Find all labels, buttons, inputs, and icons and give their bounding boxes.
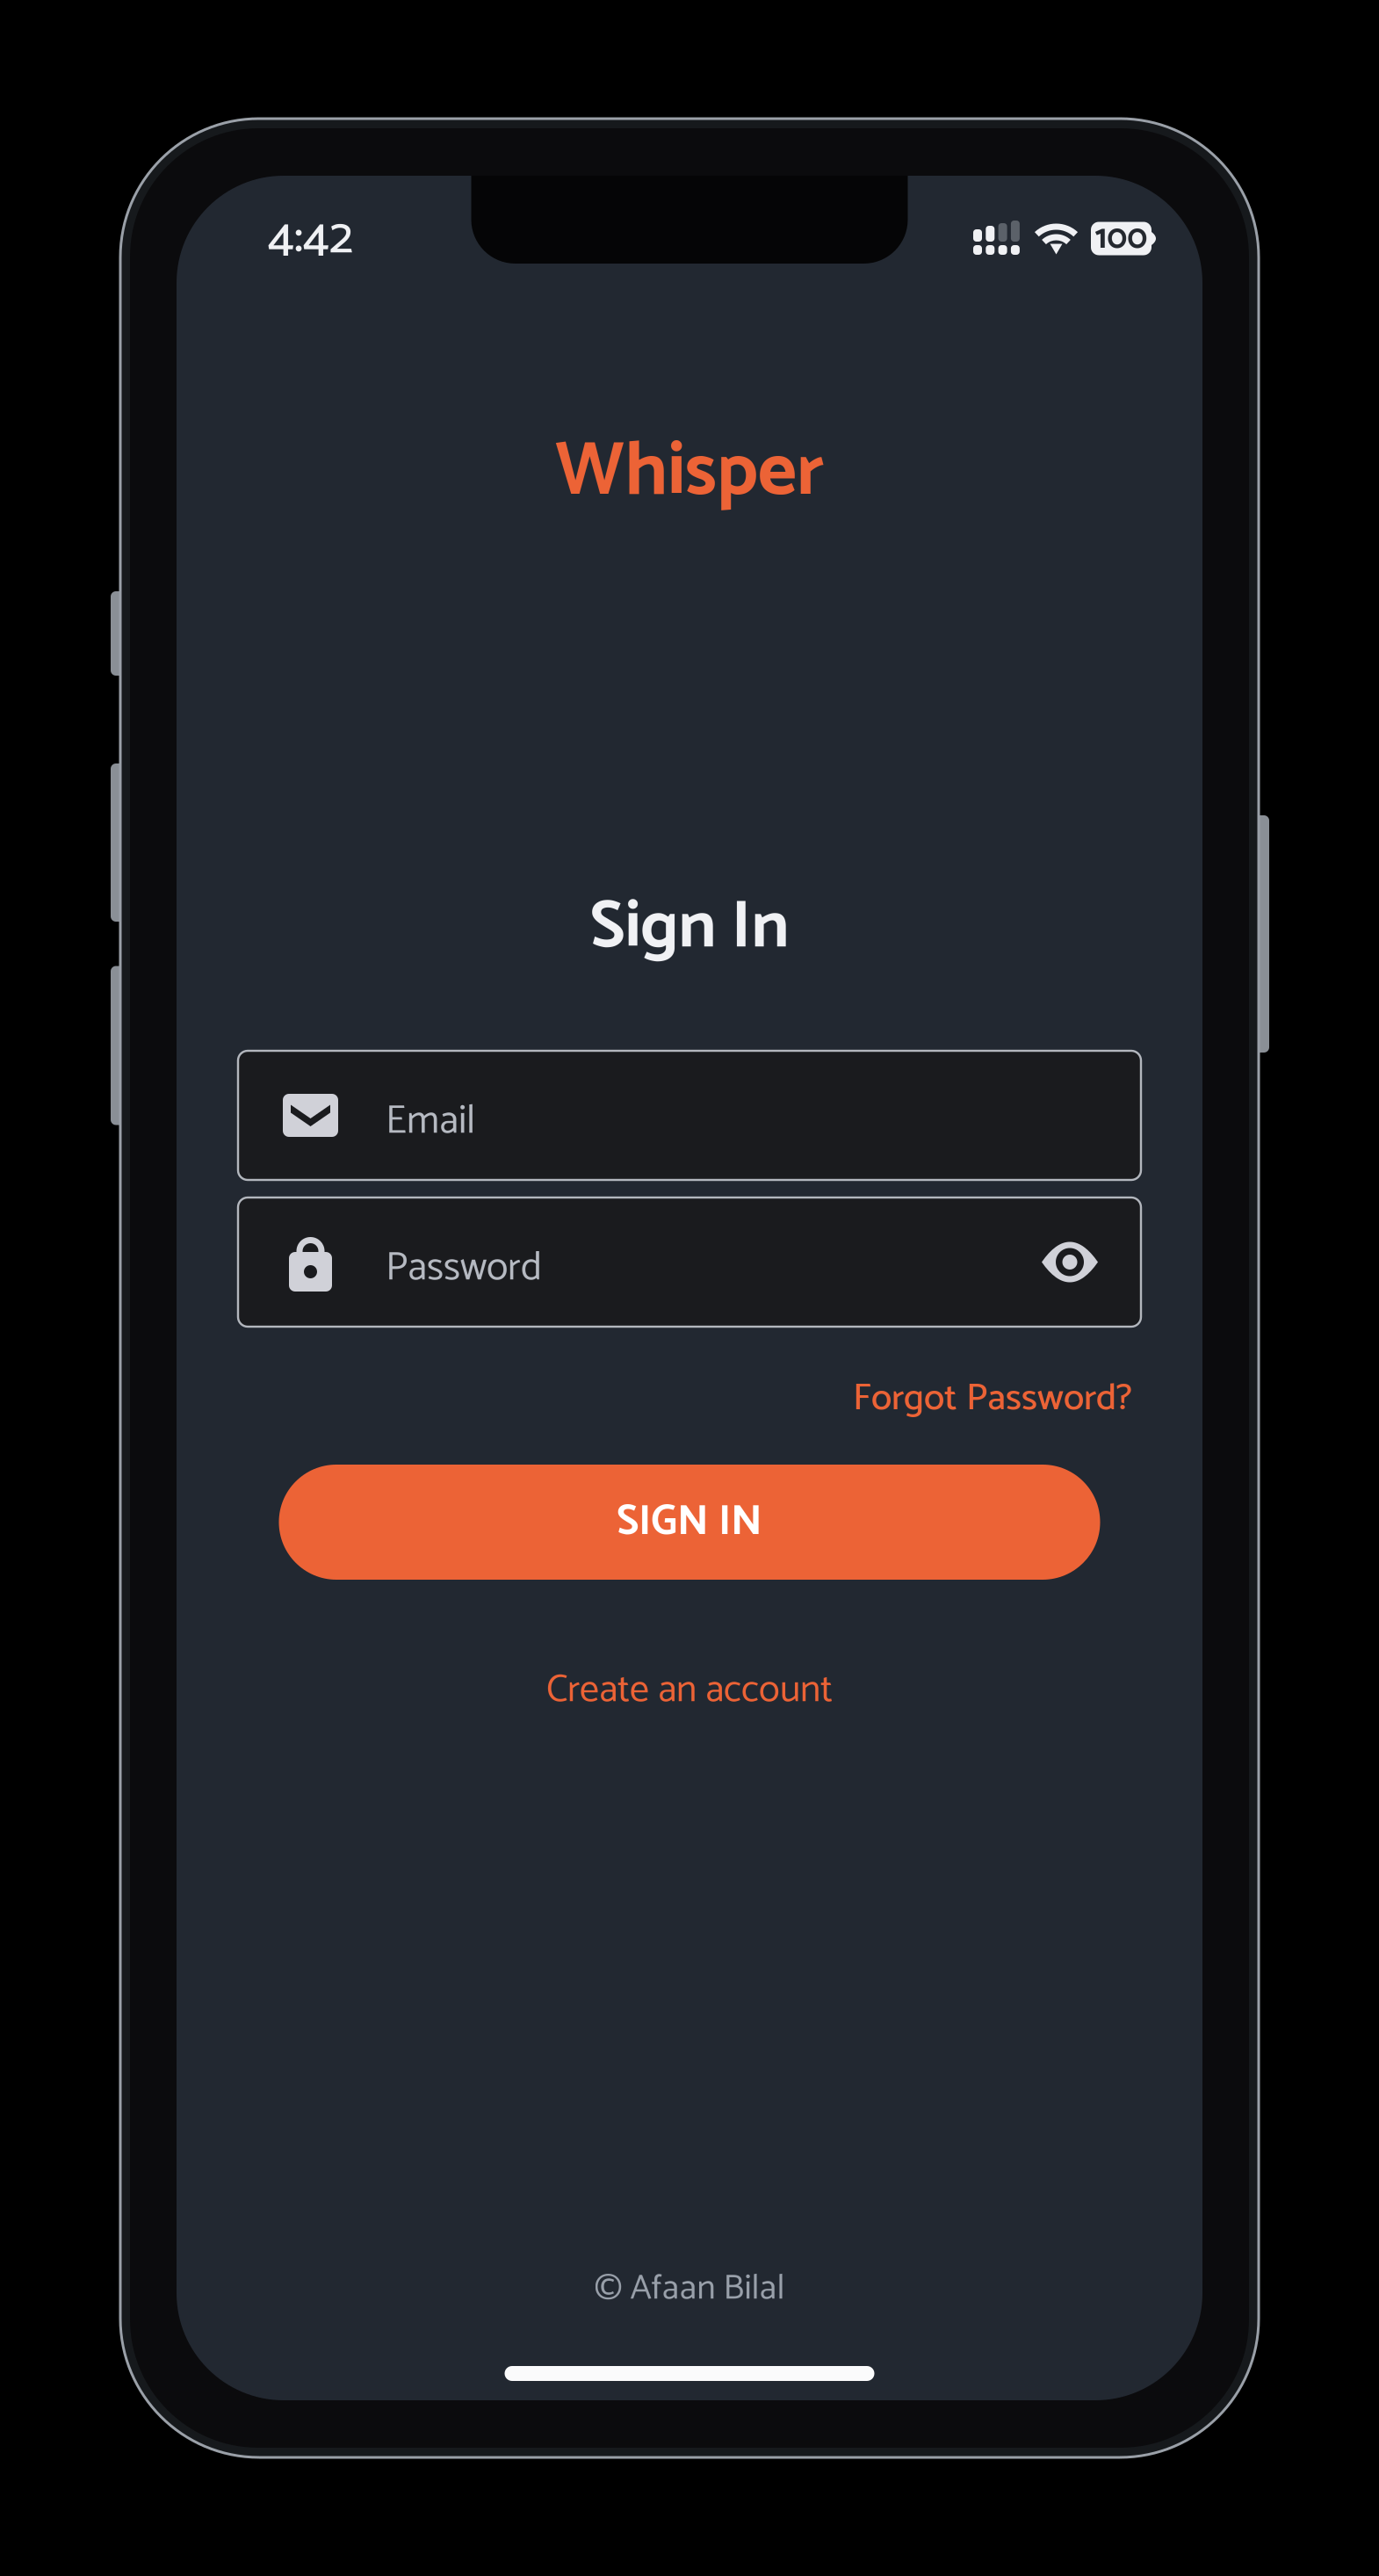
staticText: Create an account <box>546 1659 833 1722</box>
staticText: Email <box>386 1089 475 1154</box>
staticText: Sign In <box>590 873 789 983</box>
staticText: Whisper <box>555 411 824 534</box>
button[interactable]: Forgot Password? <box>853 1378 1132 1420</box>
staticText: Forgot Password? <box>853 1368 1132 1429</box>
staticText: 100 <box>1095 212 1148 265</box>
button[interactable]: SIGN IN <box>279 1465 1100 1580</box>
staticText: © Afaan Bilal <box>594 2260 785 2318</box>
staticText: Password <box>386 1236 542 1301</box>
staticText: SIGN IN <box>617 1488 762 1557</box>
staticText: 4:42 <box>268 198 353 279</box>
button[interactable]: Create an account <box>546 1669 833 1711</box>
